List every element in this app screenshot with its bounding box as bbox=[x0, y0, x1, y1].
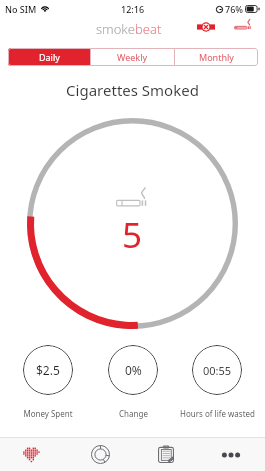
staticText: 5 bbox=[122, 211, 143, 259]
button[interactable]: Statistics bbox=[67, 438, 133, 471]
staticText: 76% bbox=[225, 3, 243, 15]
button[interactable]: 0% bbox=[91, 345, 175, 419]
staticText: Money Spent bbox=[23, 408, 73, 419]
staticText: Change bbox=[119, 408, 148, 419]
button[interactable]: Log cigarette bbox=[232, 13, 254, 35]
staticText: 0% bbox=[125, 362, 142, 378]
staticText: No SIM bbox=[5, 3, 37, 15]
staticText: beat bbox=[135, 20, 162, 38]
button[interactable]: Daily bbox=[8, 48, 90, 66]
button[interactable]: Home bbox=[0, 438, 67, 471]
button[interactable]: Reports bbox=[133, 438, 199, 471]
button[interactable]: Watch disconnected bbox=[195, 16, 217, 38]
staticText: smoke bbox=[96, 20, 135, 38]
staticText: Hours of life wasted bbox=[180, 408, 255, 419]
button[interactable]: Weekly bbox=[91, 48, 174, 66]
staticText: 12:16 bbox=[121, 3, 145, 15]
button[interactable]: 00:55 bbox=[175, 345, 259, 419]
staticText: $2.5 bbox=[36, 362, 60, 378]
staticText: Monthly bbox=[199, 51, 234, 63]
button[interactable]: More bbox=[199, 438, 265, 471]
staticText: 00:55 bbox=[203, 363, 232, 378]
staticText: Daily bbox=[39, 51, 60, 63]
staticText: Cigarettes Smoked bbox=[0, 80, 265, 100]
button[interactable]: $2.5 bbox=[6, 345, 90, 419]
button[interactable]: Monthly bbox=[175, 48, 258, 66]
staticText: Weekly bbox=[117, 51, 148, 63]
